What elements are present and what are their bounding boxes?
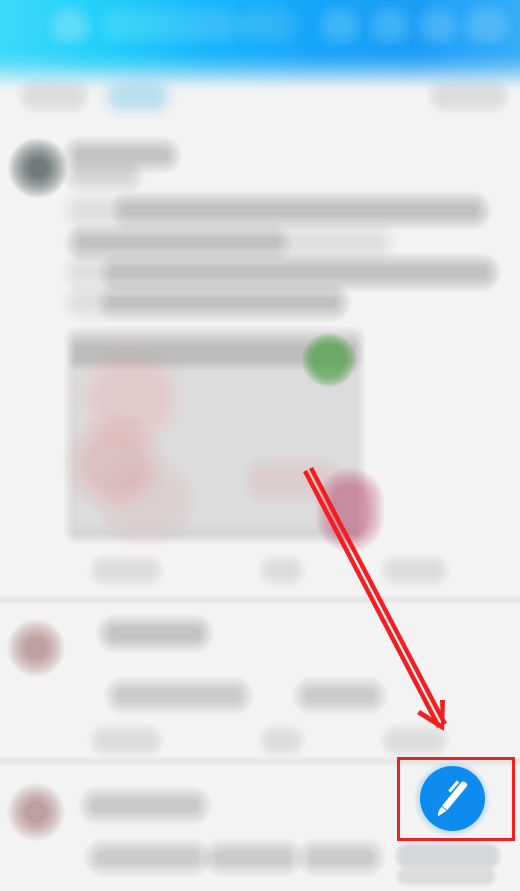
button[interactable]: Comment	[0, 0, 520, 891]
button[interactable]: Profile picture	[0, 0, 520, 891]
button[interactable]: Repost	[0, 0, 520, 891]
button[interactable]: All	[0, 0, 520, 130]
button[interactable]: Profile picture	[0, 0, 520, 891]
button[interactable]: Menu	[0, 0, 520, 60]
button[interactable]: Repost	[0, 0, 520, 891]
button[interactable]: Compose	[0, 0, 520, 891]
button[interactable]: More	[0, 0, 520, 130]
button[interactable]: Search	[0, 0, 520, 60]
button[interactable]: Like	[0, 0, 520, 891]
button[interactable]: Comment	[0, 0, 520, 891]
button[interactable]: Notifications	[0, 0, 520, 60]
button[interactable]: Like	[0, 0, 520, 891]
button[interactable]: Profile	[0, 0, 520, 60]
button[interactable]: Profile picture	[0, 0, 520, 891]
button[interactable]: Messages	[0, 0, 520, 60]
button[interactable]: Selected filter	[0, 0, 520, 130]
button[interactable]: Attached photo	[0, 0, 520, 891]
